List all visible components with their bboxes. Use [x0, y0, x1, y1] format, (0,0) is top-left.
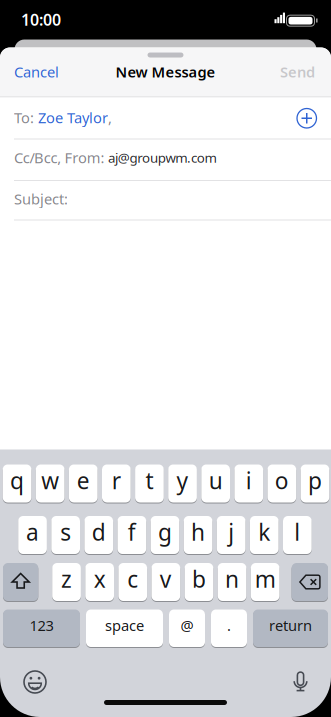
staticText: p	[308, 465, 322, 495]
button[interactable]: Add contact	[297, 108, 316, 128]
button[interactable]: t	[135, 464, 164, 503]
staticText: g	[158, 517, 172, 547]
staticText: @	[180, 615, 193, 635]
staticText: return	[269, 615, 312, 635]
staticText: Zoe Taylor	[38, 108, 108, 127]
button[interactable]: m	[251, 562, 279, 601]
button[interactable]: a	[18, 515, 47, 554]
button[interactable]: l	[283, 515, 312, 554]
button[interactable]: h	[184, 515, 212, 554]
staticText: New Message	[115, 62, 215, 81]
staticText: t	[145, 465, 153, 495]
button[interactable]: 123	[3, 609, 80, 647]
button[interactable]: g	[151, 515, 179, 554]
button[interactable]: w	[36, 464, 64, 503]
button[interactable]: v	[151, 562, 180, 601]
staticText: s	[60, 517, 71, 547]
staticText: Cancel	[14, 62, 59, 81]
button[interactable]: b	[185, 562, 213, 601]
button[interactable]: Delete	[292, 562, 328, 601]
staticText: i	[246, 465, 252, 495]
staticText: q	[10, 465, 24, 495]
button[interactable]: Emoji	[20, 667, 50, 697]
staticText: Send	[280, 62, 315, 81]
button[interactable]: @	[169, 609, 205, 647]
button[interactable]: q	[3, 464, 31, 503]
staticText: x	[94, 564, 106, 594]
staticText: u	[209, 465, 223, 495]
staticText: z	[61, 564, 72, 594]
staticText: l	[294, 517, 300, 547]
button[interactable]: o	[267, 464, 296, 503]
button[interactable]: Send	[280, 62, 315, 81]
button[interactable]: x	[85, 562, 114, 601]
button[interactable]: .	[211, 609, 247, 647]
staticText: d	[92, 517, 106, 547]
button[interactable]: Cc/Bcc, From	[0, 139, 331, 180]
button[interactable]: return	[253, 609, 328, 647]
button[interactable]: e	[69, 464, 98, 503]
staticText: n	[225, 564, 239, 594]
button[interactable]: p	[301, 464, 329, 503]
staticText: f	[128, 517, 136, 547]
button[interactable]: Subject	[0, 180, 331, 219]
staticText: Subject:	[14, 189, 68, 208]
staticText: a	[26, 517, 39, 547]
button[interactable]: z	[52, 562, 81, 601]
staticText: To:	[14, 108, 38, 127]
button[interactable]: Shift	[3, 562, 38, 601]
button[interactable]: f	[117, 515, 146, 554]
staticText: aj@groupwm.com	[108, 149, 216, 166]
staticText: y	[176, 465, 188, 495]
staticText: e	[77, 465, 90, 495]
button[interactable]: To	[0, 97, 331, 138]
staticText: w	[41, 465, 59, 495]
button[interactable]: s	[51, 515, 80, 554]
staticText: Cc/Bcc, From:	[14, 148, 108, 167]
staticText: j	[228, 517, 234, 547]
button[interactable]: y	[168, 464, 197, 503]
button[interactable]: k	[250, 515, 279, 554]
staticText: m	[255, 564, 276, 594]
button[interactable]: space	[86, 609, 163, 647]
staticText: v	[160, 564, 172, 594]
button[interactable]: j	[217, 515, 245, 554]
staticText: ,	[108, 108, 112, 127]
button[interactable]: c	[118, 562, 147, 601]
button[interactable]: r	[102, 464, 131, 503]
staticText: k	[258, 517, 270, 547]
staticText: r	[112, 465, 121, 495]
button[interactable]: Cancel	[0, 47, 59, 81]
button[interactable]: u	[201, 464, 230, 503]
staticText: 123	[29, 615, 53, 635]
staticText: o	[275, 465, 289, 495]
button[interactable]: Zoe Taylor	[38, 108, 108, 127]
button[interactable]: n	[218, 562, 246, 601]
button[interactable]: d	[84, 515, 113, 554]
button[interactable]: i	[234, 464, 263, 503]
staticText: b	[192, 564, 206, 594]
button[interactable]: Dictate	[289, 669, 313, 695]
staticText: 10:00	[21, 9, 61, 30]
staticText: space	[105, 615, 144, 635]
staticText: c	[127, 564, 138, 594]
staticText: h	[191, 517, 205, 547]
staticText: .	[227, 615, 231, 635]
